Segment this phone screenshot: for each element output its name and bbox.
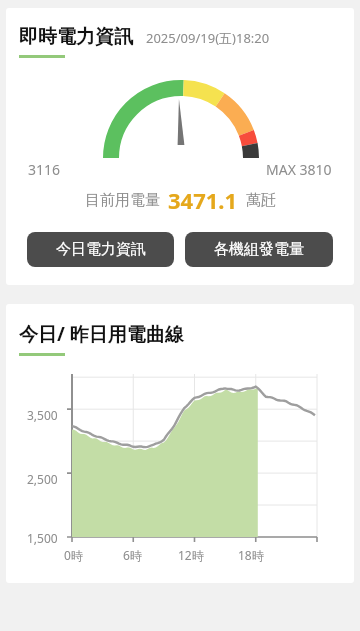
staticText: 3471.1	[168, 185, 238, 215]
staticText: MAX 3810	[266, 160, 332, 179]
staticText: 6時	[123, 547, 142, 563]
staticText: 1,500	[27, 530, 58, 546]
staticText: 3,500	[27, 407, 58, 423]
button[interactable]: 今日電力資訊	[27, 232, 174, 267]
staticText: 12時	[178, 547, 204, 563]
staticText: 3116	[28, 160, 61, 179]
staticText: 2,500	[27, 471, 58, 487]
staticText: 0時	[64, 547, 83, 563]
staticText: 各機組發電量	[214, 240, 304, 259]
staticText: 即時電力資訊	[19, 25, 133, 49]
button[interactable]: 各機組發電量	[185, 232, 333, 267]
staticText: 18時	[238, 547, 264, 563]
staticText: 今日/ 昨日用電曲線	[19, 321, 184, 347]
staticText: 萬瓩	[246, 191, 276, 210]
staticText: 今日電力資訊	[56, 240, 146, 259]
staticText: 2025/09/19(五)18:20	[146, 29, 270, 47]
staticText: 目前用電量	[85, 191, 160, 210]
